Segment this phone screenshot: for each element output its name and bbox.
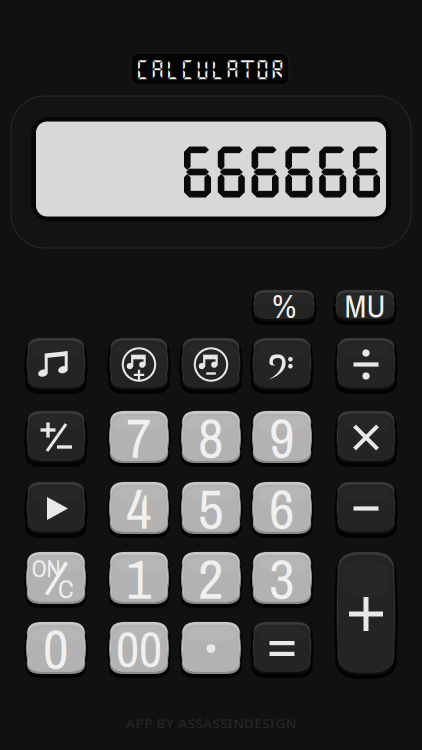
staticText: 2 xyxy=(198,541,224,616)
button[interactable]: Remove note xyxy=(182,339,240,390)
button[interactable]: 7 xyxy=(110,412,168,463)
staticText: 00 xyxy=(116,614,162,683)
button[interactable]: 9 xyxy=(253,412,311,463)
button[interactable]: 1 xyxy=(110,553,168,604)
button[interactable]: 4 xyxy=(110,483,168,534)
staticText: 3 xyxy=(269,541,295,616)
button[interactable]: % xyxy=(253,291,314,321)
button[interactable]: MU xyxy=(335,291,394,321)
staticText: ON xyxy=(31,552,60,585)
button[interactable]: 0 xyxy=(27,623,85,674)
staticText: 8 xyxy=(198,400,224,475)
staticText: 0 xyxy=(43,611,69,686)
staticText: MU xyxy=(344,284,385,327)
button[interactable]: Multiply xyxy=(337,412,395,463)
button[interactable]: Plus xyxy=(337,553,395,675)
staticText: 9 xyxy=(269,400,295,475)
button[interactable]: 5 xyxy=(182,483,240,534)
button[interactable]: Play xyxy=(27,483,85,534)
staticText: 6 xyxy=(269,471,295,546)
button[interactable]: Equals xyxy=(253,623,311,674)
staticText: 7 xyxy=(126,400,152,475)
button[interactable]: 00 xyxy=(110,623,168,674)
staticText: 1 xyxy=(126,541,152,616)
staticText: APP BY ASSASSINDESIGN xyxy=(126,714,296,732)
button[interactable]: Bass clef xyxy=(253,339,311,390)
button[interactable]: 6 xyxy=(253,483,311,534)
button[interactable]: 8 xyxy=(182,412,240,463)
button[interactable]: On Clear xyxy=(27,553,85,604)
staticText: CALCULATOR xyxy=(135,57,285,81)
staticText: 5 xyxy=(198,471,224,546)
button[interactable]: Minus xyxy=(337,483,395,534)
button[interactable]: 3 xyxy=(253,553,311,604)
staticText: 4 xyxy=(126,471,152,546)
button[interactable]: Divide xyxy=(337,339,395,390)
button[interactable]: Music xyxy=(27,339,85,390)
button[interactable]: Add note xyxy=(110,339,168,390)
button[interactable]: Decimal point xyxy=(182,623,240,674)
button[interactable]: Plus minus xyxy=(27,412,85,463)
staticText: C xyxy=(58,570,74,606)
staticText: % xyxy=(272,284,296,328)
button[interactable]: 2 xyxy=(182,553,240,604)
